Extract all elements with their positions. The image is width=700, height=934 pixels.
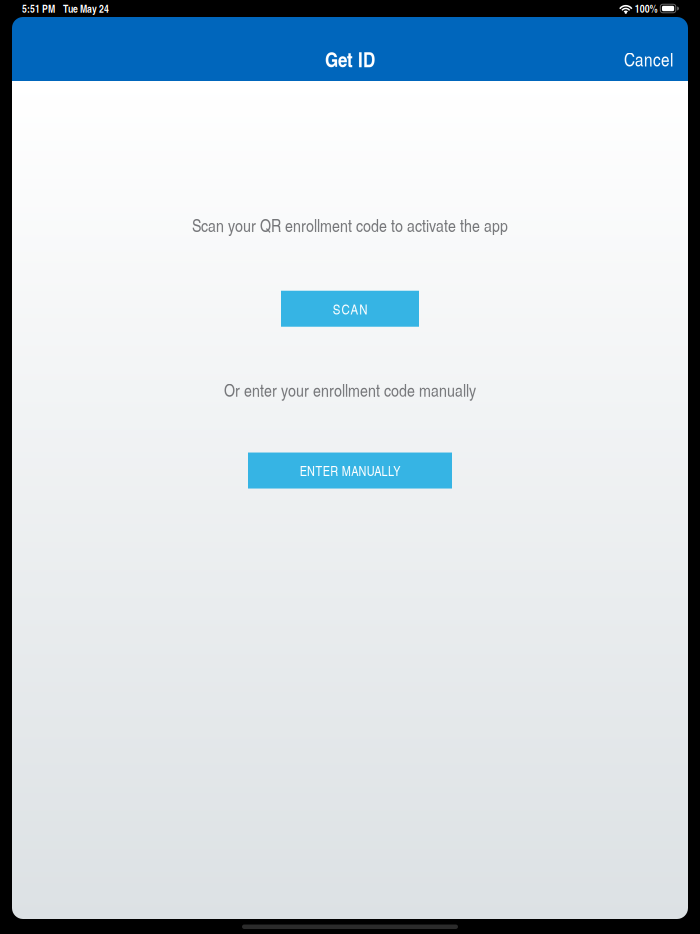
button[interactable]: Cancel	[602, 35, 688, 83]
staticText: Tue May 24	[63, 1, 109, 16]
staticText: Or enter your enrollment code manually	[224, 378, 476, 402]
staticText: Cancel	[624, 46, 673, 72]
staticText: SCAN	[333, 299, 367, 318]
button[interactable]: ENTER MANUALLY	[248, 452, 452, 488]
staticText: Scan your QR enrollment code to activate…	[192, 213, 508, 237]
staticText: Get ID	[325, 44, 375, 74]
staticText: ENTER MANUALLY	[300, 461, 400, 480]
staticText: 100%	[635, 1, 658, 16]
button[interactable]: SCAN	[281, 291, 419, 327]
staticText: 5:51 PM	[22, 1, 55, 16]
